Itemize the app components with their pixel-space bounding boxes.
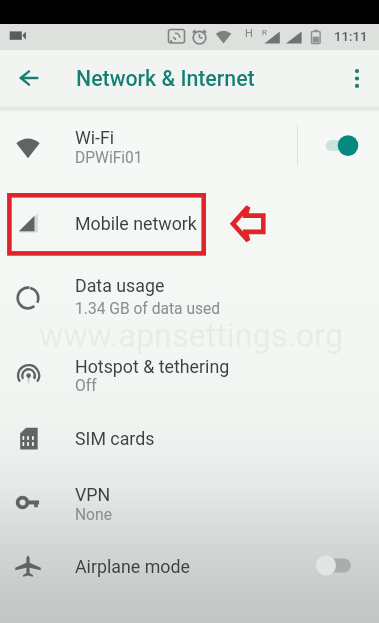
staticText: www.apnsettings.org <box>39 317 344 355</box>
staticText: None <box>75 506 112 524</box>
button[interactable] <box>0 532 379 600</box>
button[interactable]: Back <box>5 54 53 102</box>
button[interactable] <box>0 470 379 538</box>
staticText: Mobile network <box>75 213 197 234</box>
staticText: 1.34 GB of data used <box>75 300 221 318</box>
staticText: SIM cards <box>75 428 155 449</box>
staticText: 11:11 <box>334 29 368 44</box>
button[interactable] <box>0 113 379 181</box>
button[interactable] <box>0 404 379 472</box>
button[interactable]: Airplane mode toggle <box>314 553 358 580</box>
button[interactable] <box>0 264 379 332</box>
staticText: Wi-Fi <box>75 127 115 148</box>
button[interactable] <box>0 188 379 256</box>
button[interactable] <box>0 342 379 410</box>
staticText: Hotspot & tethering <box>75 356 230 377</box>
button[interactable]: More options <box>333 54 379 102</box>
staticText: DPWiFi01 <box>75 149 143 167</box>
staticText: R <box>262 28 267 37</box>
staticText: Network & Internet <box>76 66 255 91</box>
button[interactable]: Wi-Fi toggle <box>321 132 361 159</box>
staticText: Data usage <box>75 275 165 296</box>
staticText: Off <box>75 377 97 395</box>
staticText: VPN <box>75 484 111 505</box>
staticText: Airplane mode <box>75 556 190 577</box>
staticText: H <box>245 27 253 40</box>
